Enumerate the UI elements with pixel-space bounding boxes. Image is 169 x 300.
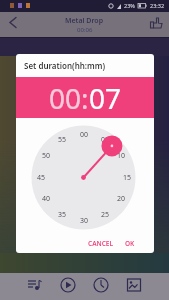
staticText: 40 <box>42 194 51 204</box>
staticText: 45 <box>37 173 46 183</box>
staticText: 35 <box>58 210 67 220</box>
staticText: 00 <box>80 130 89 140</box>
staticText: 23% <box>124 2 135 9</box>
staticText: 00: <box>49 79 89 117</box>
button[interactable] <box>25 275 45 295</box>
staticText: CANCEL <box>88 239 113 248</box>
staticText: 30 <box>80 216 89 226</box>
button[interactable] <box>124 275 144 295</box>
staticText: 15 <box>123 173 132 183</box>
button[interactable] <box>147 13 165 31</box>
staticText: 23:32 <box>150 2 165 9</box>
staticText: 00:06 <box>77 26 93 34</box>
staticText: 25 <box>101 210 110 220</box>
button[interactable] <box>91 275 111 295</box>
staticText: OK <box>125 239 135 248</box>
staticText: 50 <box>42 151 51 161</box>
button[interactable] <box>5 14 21 30</box>
staticText: Metal Drop <box>65 16 104 26</box>
staticText: 10 <box>117 151 126 161</box>
staticText: Set duration(hh:mm) <box>24 60 106 71</box>
staticText: 55 <box>58 135 67 145</box>
button[interactable] <box>58 275 78 295</box>
staticText: 05 <box>101 135 110 145</box>
staticText: 20 <box>117 194 126 204</box>
staticText: 07 <box>89 79 122 117</box>
button[interactable]: CANCEL <box>84 236 117 250</box>
button[interactable]: OK <box>120 236 140 250</box>
